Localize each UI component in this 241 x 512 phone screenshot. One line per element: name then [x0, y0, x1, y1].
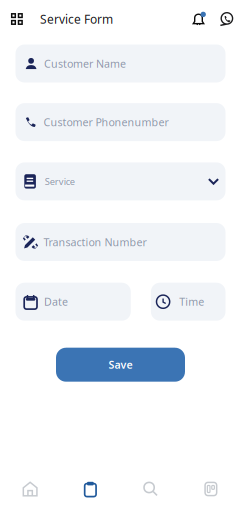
staticText: Time	[179, 295, 204, 309]
staticText: Customer Phonenumber	[43, 115, 168, 129]
staticText: Save	[108, 358, 132, 372]
staticText: Date	[44, 295, 68, 309]
staticText: Service Form	[40, 11, 113, 27]
button[interactable]: Search	[120, 473, 181, 505]
staticText: Customer Name	[44, 56, 126, 71]
button[interactable]: Home	[0, 473, 60, 505]
button[interactable]: Save	[56, 348, 185, 382]
button[interactable]: Date	[15, 283, 131, 321]
button[interactable]: Menu	[6, 5, 28, 33]
button[interactable]: Notifications	[189, 6, 207, 32]
button[interactable]: Dashboard	[181, 473, 241, 505]
button[interactable]: Forms	[60, 473, 120, 505]
button[interactable]: Transaction Number	[15, 223, 225, 261]
button[interactable]: WhatsApp	[215, 6, 237, 32]
button[interactable]: Customer Phonenumber	[15, 103, 225, 141]
button[interactable]: Time	[151, 283, 225, 321]
staticText: Service	[45, 175, 75, 188]
button[interactable]: Service	[15, 162, 225, 200]
button[interactable]: Customer Name	[15, 44, 225, 82]
staticText: Transaction Number	[43, 235, 146, 249]
